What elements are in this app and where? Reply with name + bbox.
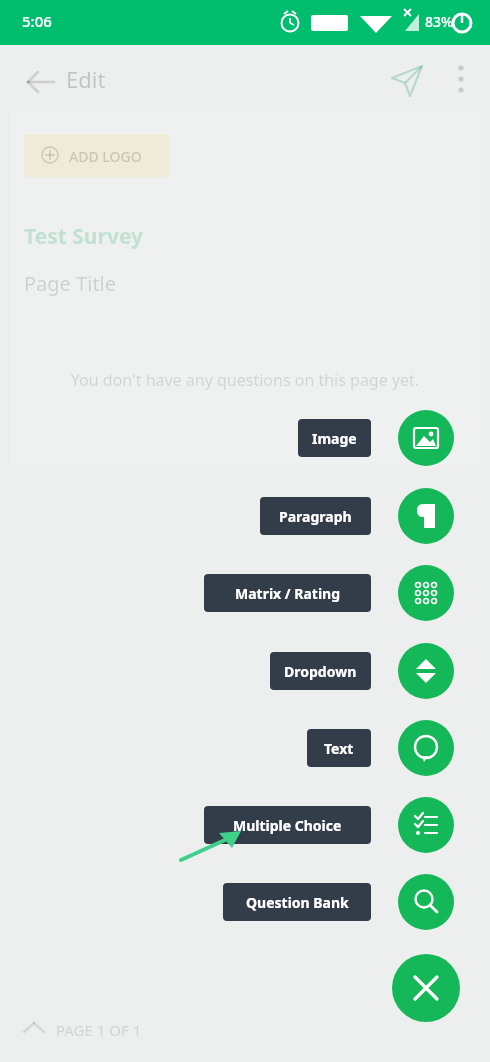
staticText: Matrix / Rating	[235, 584, 341, 603]
staticText: You don't have any questions on this pag…	[0, 369, 490, 397]
button[interactable]: Text	[307, 729, 371, 767]
button[interactable]: Send	[382, 56, 430, 104]
button[interactable]: Matrix / Rating	[204, 574, 371, 612]
button[interactable]: More options	[438, 56, 484, 102]
staticText: Paragraph	[279, 507, 352, 526]
staticText: Edit	[66, 64, 106, 94]
staticText: Dropdown	[284, 662, 357, 681]
staticText: Question Bank	[246, 893, 349, 912]
staticText: 83%	[425, 12, 453, 31]
button[interactable]: Dropdown	[270, 652, 371, 690]
button[interactable]: Text	[398, 720, 454, 776]
button[interactable]: Image	[298, 419, 371, 457]
button[interactable]: Back	[10, 58, 58, 106]
button[interactable]: Multiple Choice	[398, 797, 454, 853]
staticText: Text	[324, 739, 354, 758]
staticText: Multiple Choice	[233, 816, 342, 835]
button[interactable]: Close menu	[392, 954, 460, 1022]
staticText: Image	[312, 429, 357, 448]
staticText: 5:06	[22, 11, 52, 31]
button[interactable]: Paragraph	[260, 497, 371, 535]
staticText: PAGE 1 OF 1	[56, 1020, 142, 1040]
button[interactable]: Question Bank	[223, 883, 371, 921]
staticText: Page Title	[24, 270, 117, 297]
staticText: Test Survey	[24, 222, 144, 251]
button[interactable]: Dropdown	[398, 643, 454, 699]
button[interactable]: PAGE 1 OF 1	[0, 1004, 260, 1062]
button[interactable]: Paragraph	[398, 488, 454, 544]
staticText: ADD LOGO	[69, 147, 142, 166]
button[interactable]: Question Bank	[398, 874, 454, 930]
button[interactable]: Matrix / Rating	[398, 565, 454, 621]
button[interactable]: Image	[398, 410, 454, 466]
button[interactable]: ADD LOGO	[24, 134, 169, 177]
button[interactable]: Multiple Choice	[204, 806, 371, 844]
